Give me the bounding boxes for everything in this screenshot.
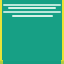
button[interactable] (3, 15, 61, 17)
other: Right accent edge (62, 0, 64, 64)
button[interactable] (3, 7, 61, 9)
button[interactable] (3, 11, 61, 13)
button[interactable]: Action accent (61, 60, 64, 64)
other: Left accent edge (0, 0, 2, 64)
button[interactable]: Navigation accent (0, 60, 3, 64)
button[interactable] (3, 4, 61, 6)
